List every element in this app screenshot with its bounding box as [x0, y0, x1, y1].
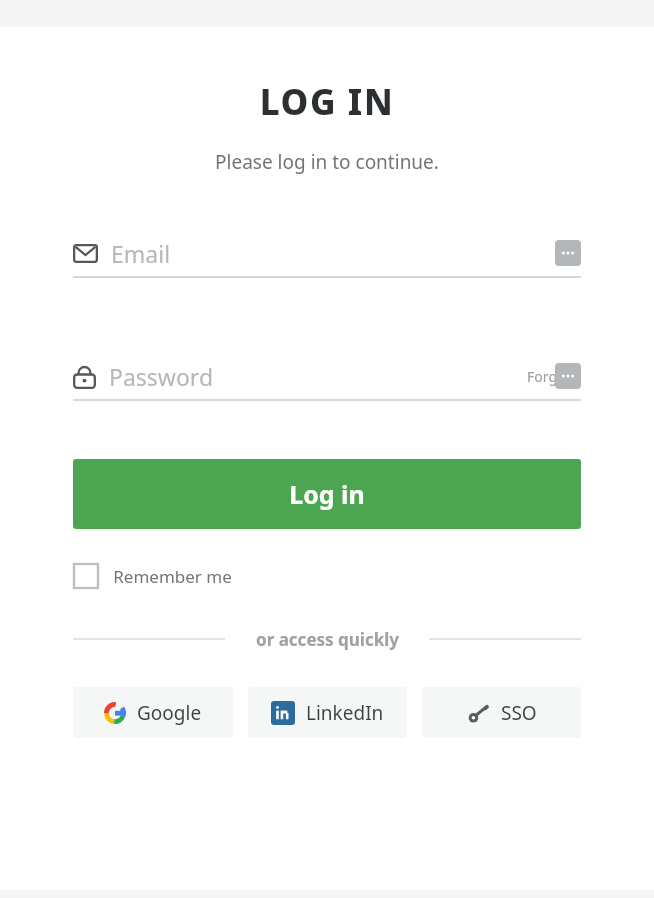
button[interactable]: LinkedIn [248, 687, 407, 738]
button[interactable]: Remember me [73, 556, 232, 596]
button[interactable]: Google [73, 687, 233, 738]
staticText: Remember me [113, 565, 232, 588]
staticText: Password [109, 361, 214, 392]
other: Email [73, 244, 98, 263]
button[interactable]: Log in [73, 459, 581, 529]
button[interactable]: More options [555, 363, 581, 389]
button[interactable]: More options [555, 240, 581, 266]
staticText: Please log in to continue. [0, 149, 654, 175]
staticText: Log in [289, 477, 365, 511]
staticText: SSO [501, 700, 537, 726]
staticText: Email [111, 238, 171, 269]
staticText: or access quickly [256, 628, 399, 650]
staticText: LinkedIn [306, 700, 384, 726]
button[interactable]: Password [73, 353, 581, 401]
staticText: LOG IN [0, 78, 654, 126]
staticText: Forgot? [527, 367, 577, 386]
staticText: Google [137, 700, 202, 726]
button[interactable]: SSO [422, 687, 581, 738]
other: Password [73, 364, 96, 389]
button[interactable]: Email [73, 230, 581, 278]
